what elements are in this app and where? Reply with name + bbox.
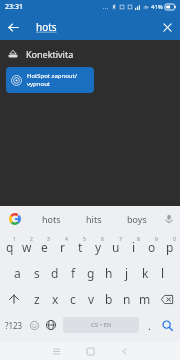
staticText: hots [42,213,61,225]
staticText: d [51,265,59,281]
staticText: o [148,239,156,255]
button[interactable]: j [118,260,136,286]
staticText: 0 [173,236,176,243]
button[interactable]: x [46,286,64,312]
staticText: p [166,239,174,255]
staticText: 4 [65,236,68,243]
button[interactable]: hits [72,206,115,232]
button[interactable]: a [8,260,27,286]
staticText: boys [127,213,147,225]
button[interactable]: v [82,286,100,312]
staticText: CS • EN [91,321,112,329]
button[interactable]: Home [73,342,107,360]
staticText: s [34,265,40,281]
staticText: h [105,265,113,281]
button[interactable]: o [143,234,161,260]
staticText: ?123 [5,320,23,331]
button[interactable]: f [64,260,82,286]
button[interactable]: Konektivita [0,45,180,63]
staticText: z [34,291,40,307]
button[interactable]: y [89,234,107,260]
button[interactable]: r [53,234,71,260]
button[interactable]: i [125,234,143,260]
staticText: hots [36,20,57,34]
staticText: i [132,239,136,255]
staticText: u [112,239,120,255]
button[interactable]: c [64,286,82,312]
staticText: m [139,291,151,307]
staticText: r [60,239,65,255]
button[interactable]: Backspace [154,286,179,312]
staticText: n [123,291,131,307]
staticText: k [142,265,149,281]
staticText: q [6,239,14,255]
staticText: b [105,291,113,307]
button[interactable]: p [161,234,179,260]
button[interactable]: l [154,260,172,286]
button[interactable]: Search [156,312,178,338]
button[interactable]: s [27,260,46,286]
button[interactable]: g [82,260,100,286]
staticText: . [148,318,151,333]
button[interactable]: b [100,286,118,312]
staticText: t [78,239,83,255]
button[interactable]: e [35,234,53,260]
button[interactable]: u [107,234,125,260]
staticText: j [125,265,129,281]
staticText: 9 [155,236,158,243]
button[interactable]: d [46,260,64,286]
button[interactable]: HotSpot zapnout/ vypnout [6,67,94,93]
button[interactable]: h [100,260,118,286]
staticText: Konektivita [26,48,74,60]
button[interactable]: q [1,234,18,260]
button[interactable]: Change language [42,312,60,338]
button[interactable]: Shift [1,286,27,312]
button[interactable]: CS • EN [63,317,139,333]
staticText: 8 [137,236,140,243]
button[interactable]: n [118,286,136,312]
button[interactable]: Back [0,14,26,40]
staticText: 3 [47,236,50,243]
staticText: v [88,291,95,307]
staticText: 1 [13,236,16,243]
staticText: w [22,239,32,255]
button[interactable]: Emoji [26,312,42,338]
staticText: f [71,265,76,281]
staticText: 5 [83,236,86,243]
button[interactable]: Clear [154,14,180,40]
staticText: 7 [119,236,122,243]
button[interactable]: hots [30,206,72,232]
button[interactable]: Recents [39,342,73,360]
staticText: g [87,265,95,281]
button[interactable]: z [27,286,46,312]
button[interactable]: k [136,260,154,286]
button[interactable]: Voice input [158,206,180,232]
staticText: 23:31 [5,2,23,12]
button[interactable]: w [18,234,35,260]
button[interactable]: Google [0,206,30,232]
staticText: HotSpot zapnout/ vypnout [27,72,77,88]
staticText: y [95,239,102,255]
button[interactable]: . [142,312,156,338]
staticText: 6 [101,236,104,243]
staticText: 2 [30,236,33,243]
button[interactable]: t [71,234,89,260]
button[interactable]: boys [115,206,158,232]
staticText: a [14,265,21,281]
staticText: c [70,291,76,307]
staticText: 41% [151,3,163,11]
button[interactable]: m [136,286,154,312]
staticText: x [52,291,59,307]
button[interactable]: ?123 [2,312,26,338]
staticText: e [41,239,48,255]
staticText: l [161,265,165,281]
staticText: hits [86,213,102,225]
button[interactable]: Back [107,342,141,360]
